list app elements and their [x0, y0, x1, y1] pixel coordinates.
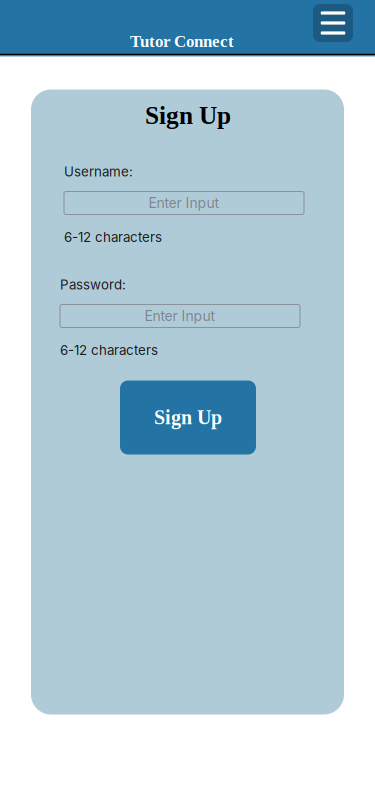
staticText: Password: — [60, 276, 126, 293]
staticText: Username: — [64, 163, 133, 180]
staticText: Enter Input — [148, 194, 219, 211]
staticText: Sign Up — [154, 406, 222, 428]
staticText: Tutor Connect — [130, 32, 234, 51]
staticText: Enter Input — [144, 307, 215, 324]
staticText: Sign Up — [145, 101, 231, 130]
button[interactable]: Sign Up — [120, 380, 256, 454]
button[interactable]: Menu — [313, 4, 353, 42]
staticText: 6-12 characters — [60, 342, 158, 358]
staticText: 6-12 characters — [64, 229, 162, 245]
